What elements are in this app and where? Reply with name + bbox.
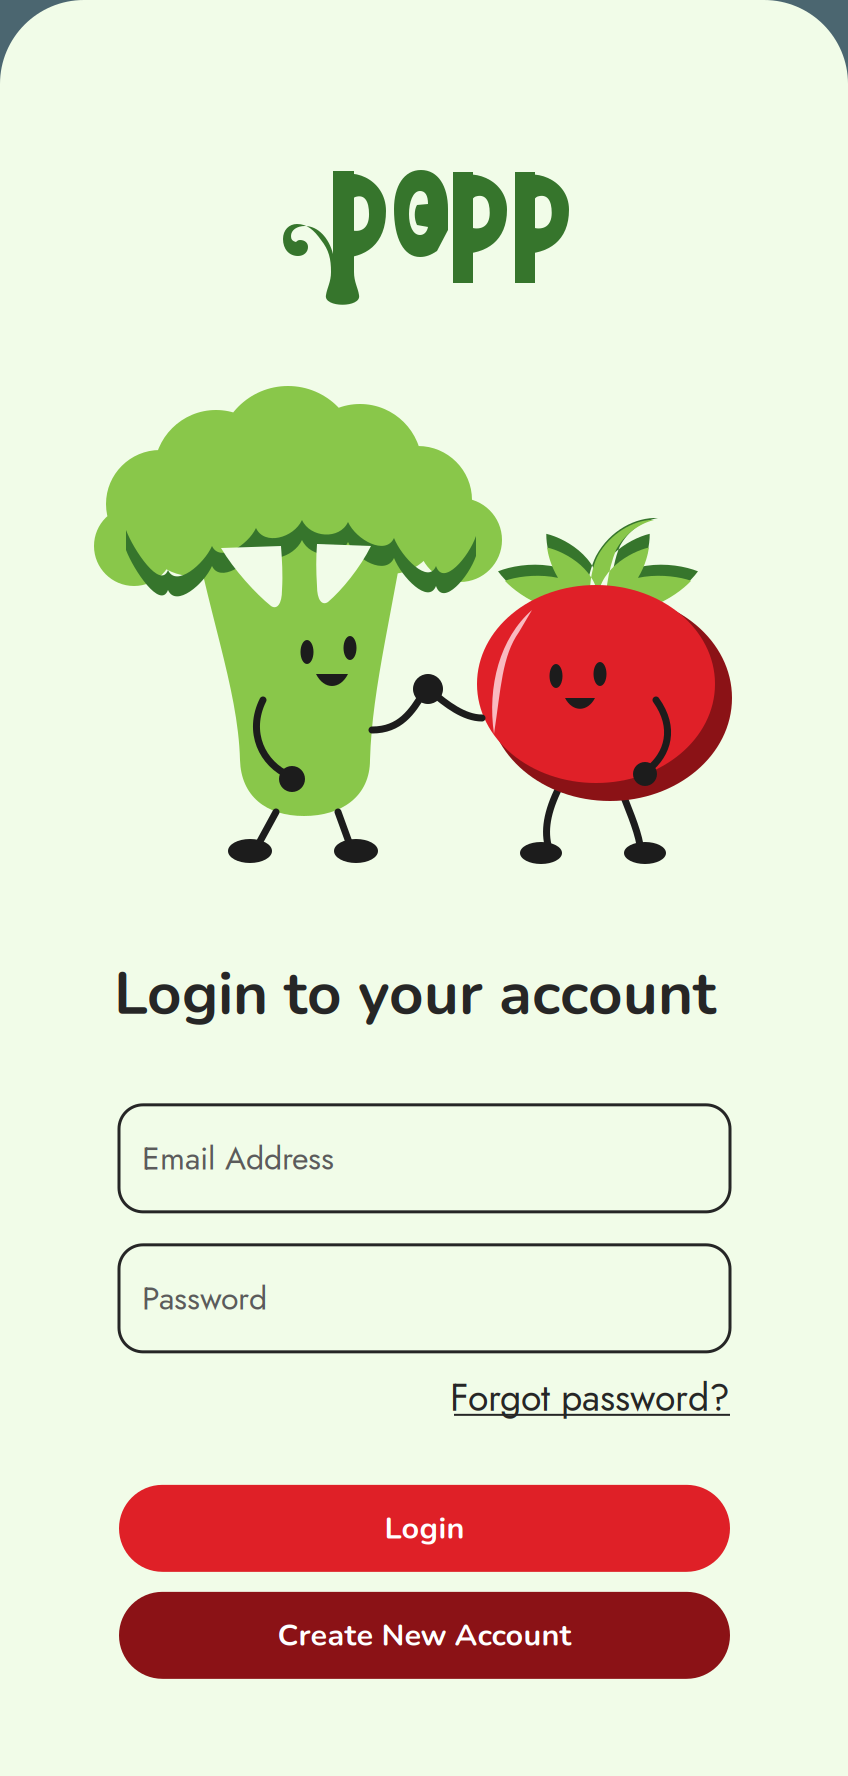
button[interactable]: Login (119, 1485, 730, 1572)
button[interactable]: Forgot password? (448, 1371, 730, 1416)
staticText: Create New Account (277, 1614, 571, 1656)
staticText: Forgot password? (450, 1371, 730, 1425)
staticText: Email Address (142, 1135, 334, 1181)
staticText: Password (142, 1275, 267, 1321)
staticText: Login (384, 1507, 464, 1549)
button[interactable]: Create New Account (119, 1592, 730, 1679)
staticText: Login to your account (114, 953, 716, 1035)
